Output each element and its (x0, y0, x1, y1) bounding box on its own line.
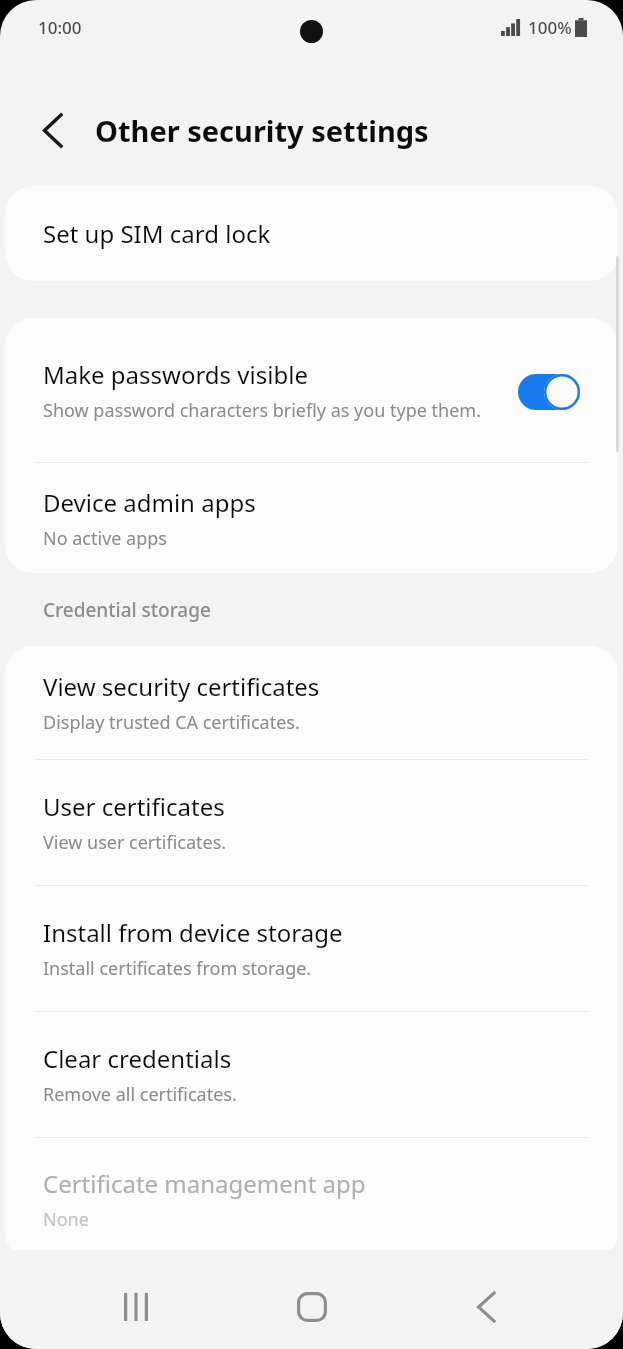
button[interactable]: Device admin apps (5, 463, 618, 573)
button[interactable]: View security certificates (5, 646, 618, 759)
staticText: Make passwords visible (43, 358, 308, 391)
button[interactable]: Make passwords visible (518, 374, 580, 410)
staticText: 100% (528, 16, 572, 39)
staticText: Install certificates from storage. (43, 956, 312, 981)
button[interactable]: Back (26, 104, 78, 156)
staticText: Other security settings (95, 111, 429, 150)
staticText: Certificate management app (43, 1167, 366, 1200)
button[interactable]: Make passwords visible (5, 318, 618, 462)
staticText: 10:00 (38, 16, 82, 39)
button[interactable]: Home (275, 1270, 349, 1344)
staticText: No active apps (43, 526, 167, 551)
button[interactable]: Clear credentials (5, 1012, 618, 1137)
button[interactable]: Back (449, 1270, 523, 1344)
staticText: Set up SIM card lock (43, 217, 271, 250)
staticText: Show password characters briefly as you … (43, 398, 481, 423)
button[interactable]: Install from device storage (5, 886, 618, 1011)
staticText: Install from device storage (43, 916, 343, 949)
button[interactable]: Recent apps (100, 1270, 174, 1344)
button[interactable]: Set up SIM card lock (5, 186, 618, 281)
staticText: Device admin apps (43, 486, 256, 519)
staticText: Display trusted CA certificates. (43, 710, 300, 735)
button[interactable]: Certificate management app (5, 1138, 618, 1260)
staticText: Credential storage (43, 597, 211, 623)
staticText: None (43, 1207, 89, 1232)
staticText: User certificates (43, 790, 225, 823)
staticText: View user certificates. (43, 830, 227, 855)
button[interactable]: User certificates (5, 760, 618, 885)
staticText: View security certificates (43, 670, 320, 703)
staticText: Clear credentials (43, 1042, 232, 1075)
staticText: Remove all certificates. (43, 1082, 237, 1107)
